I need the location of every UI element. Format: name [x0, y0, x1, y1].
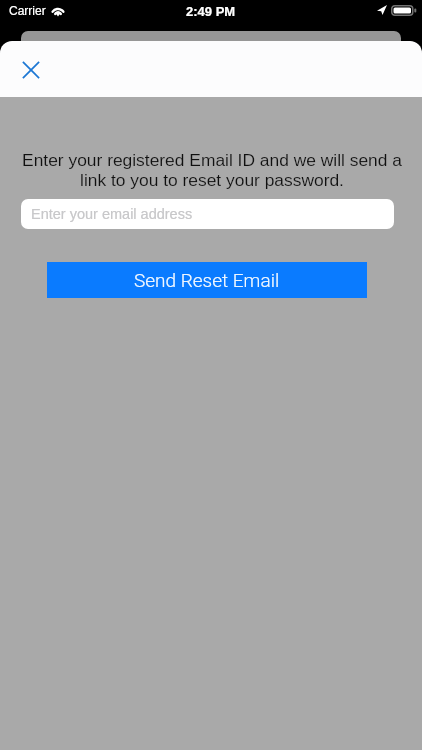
button[interactable]: Send Reset Email — [47, 262, 367, 298]
button[interactable]: Close — [13, 52, 49, 87]
staticText: Send Reset Email — [134, 269, 280, 291]
button[interactable]: Enter your email address — [21, 199, 394, 229]
staticText: Enter your registered Email ID and we wi… — [20, 150, 404, 190]
staticText: Carrier — [9, 4, 46, 17]
staticText: Enter your email address — [31, 206, 193, 222]
staticText: 2:49 PM — [186, 4, 236, 19]
